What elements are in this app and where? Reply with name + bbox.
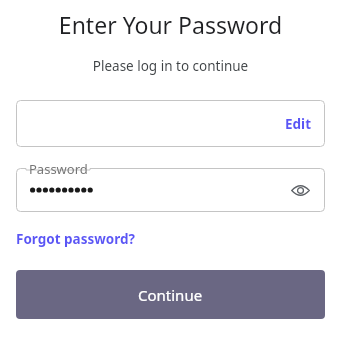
button[interactable]: Continue	[16, 270, 325, 319]
staticText: Password	[29, 160, 88, 178]
staticText: Forgot password?	[16, 230, 135, 248]
staticText: Enter Your Password	[0, 9, 341, 40]
button[interactable]: Edit	[16, 100, 325, 147]
button[interactable]: Show password	[285, 175, 315, 205]
staticText: Edit	[285, 115, 311, 133]
staticText: Continue	[138, 285, 203, 305]
button[interactable]: Forgot password?	[16, 230, 135, 248]
staticText: Please log in to continue	[0, 57, 341, 75]
